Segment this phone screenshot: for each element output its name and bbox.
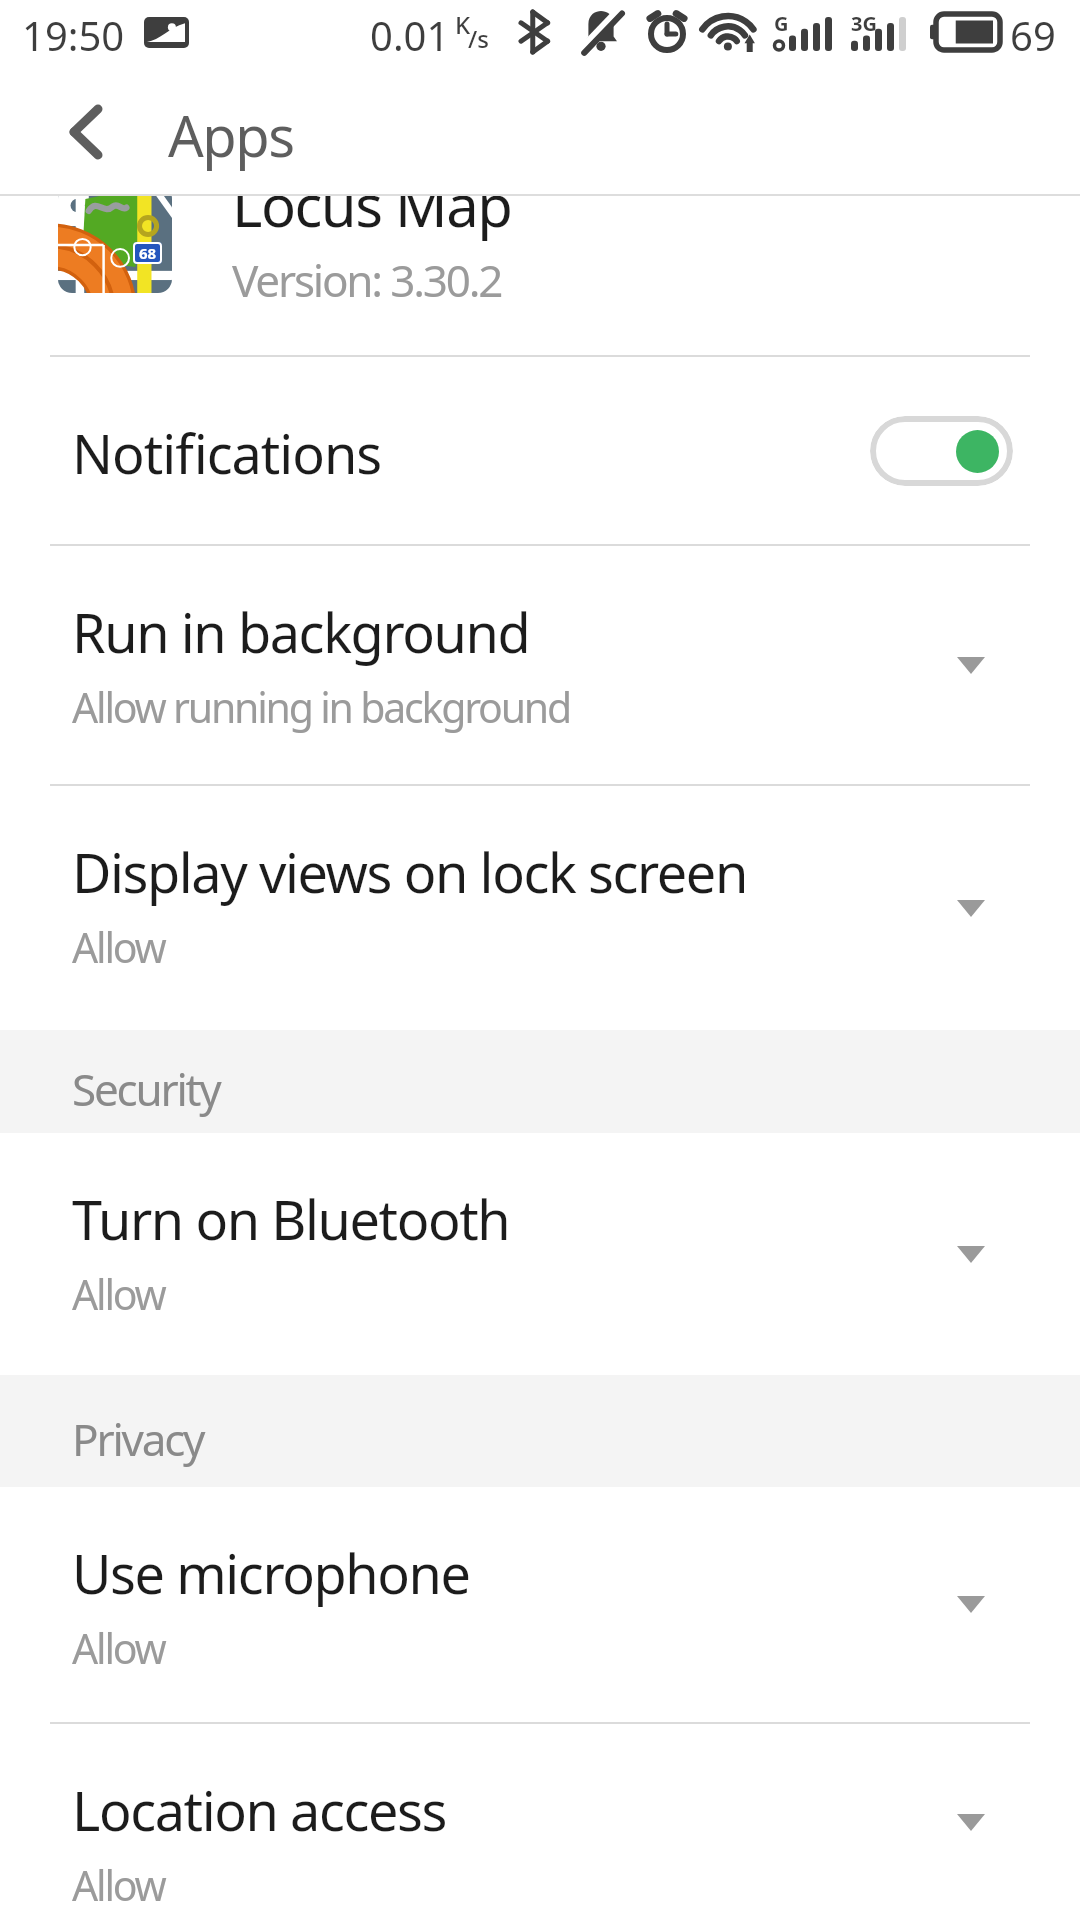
staticText: Display views on lock screen <box>72 835 747 909</box>
button[interactable]: Notifications <box>0 357 1080 544</box>
staticText: G <box>774 10 789 37</box>
staticText: Run in background <box>72 595 530 669</box>
staticText: Apps <box>168 97 294 173</box>
staticText: 3G <box>851 10 877 37</box>
button[interactable]: Run in background <box>0 546 1080 784</box>
staticText: Locus Map <box>232 196 512 244</box>
staticText: Turn on Bluetooth <box>72 1182 510 1256</box>
staticText: Security <box>72 1059 220 1119</box>
button[interactable] <box>870 416 1013 486</box>
staticText: Use microphone <box>72 1536 470 1610</box>
staticText: Version: 3.30.2 <box>232 250 502 310</box>
staticText: 0.01 <box>370 8 450 62</box>
button[interactable] <box>40 86 132 178</box>
button[interactable]: Location access <box>0 1724 1080 1920</box>
staticText: Allow <box>72 919 165 975</box>
staticText: K <box>455 8 471 41</box>
staticText: Allow <box>72 1266 165 1322</box>
staticText: Allow <box>72 1620 165 1676</box>
staticText: Allow running in background <box>72 679 570 735</box>
staticText: 69 <box>1010 8 1056 62</box>
button[interactable]: 68 <box>0 196 1080 355</box>
staticText: Location access <box>72 1773 447 1847</box>
button[interactable]: Display views on lock screen <box>0 786 1080 1030</box>
staticText: 68 <box>139 243 157 263</box>
staticText: Privacy <box>72 1409 204 1469</box>
staticText: Allow <box>72 1857 165 1913</box>
staticText: 19:50 <box>22 8 125 62</box>
staticText: Notifications <box>72 416 382 490</box>
button[interactable]: Use microphone <box>0 1487 1080 1722</box>
button[interactable]: Turn on Bluetooth <box>0 1133 1080 1375</box>
staticText: /s <box>468 22 489 55</box>
